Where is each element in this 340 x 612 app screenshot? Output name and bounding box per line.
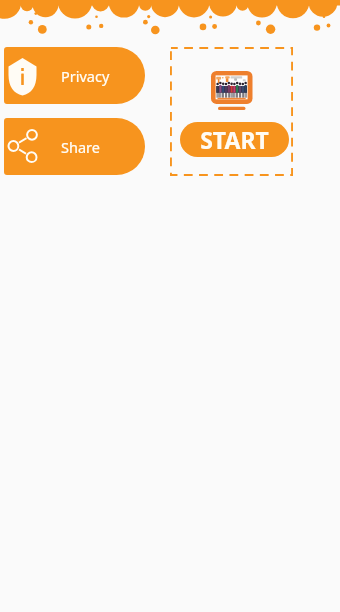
other: Live broadcast — [211, 71, 253, 110]
staticText: START — [200, 124, 269, 155]
button[interactable]: Share — [4, 118, 145, 175]
staticText: Privacy — [61, 66, 110, 86]
staticText: Share — [61, 137, 100, 157]
button[interactable]: Privacy — [4, 47, 145, 104]
button[interactable]: START — [180, 122, 289, 157]
